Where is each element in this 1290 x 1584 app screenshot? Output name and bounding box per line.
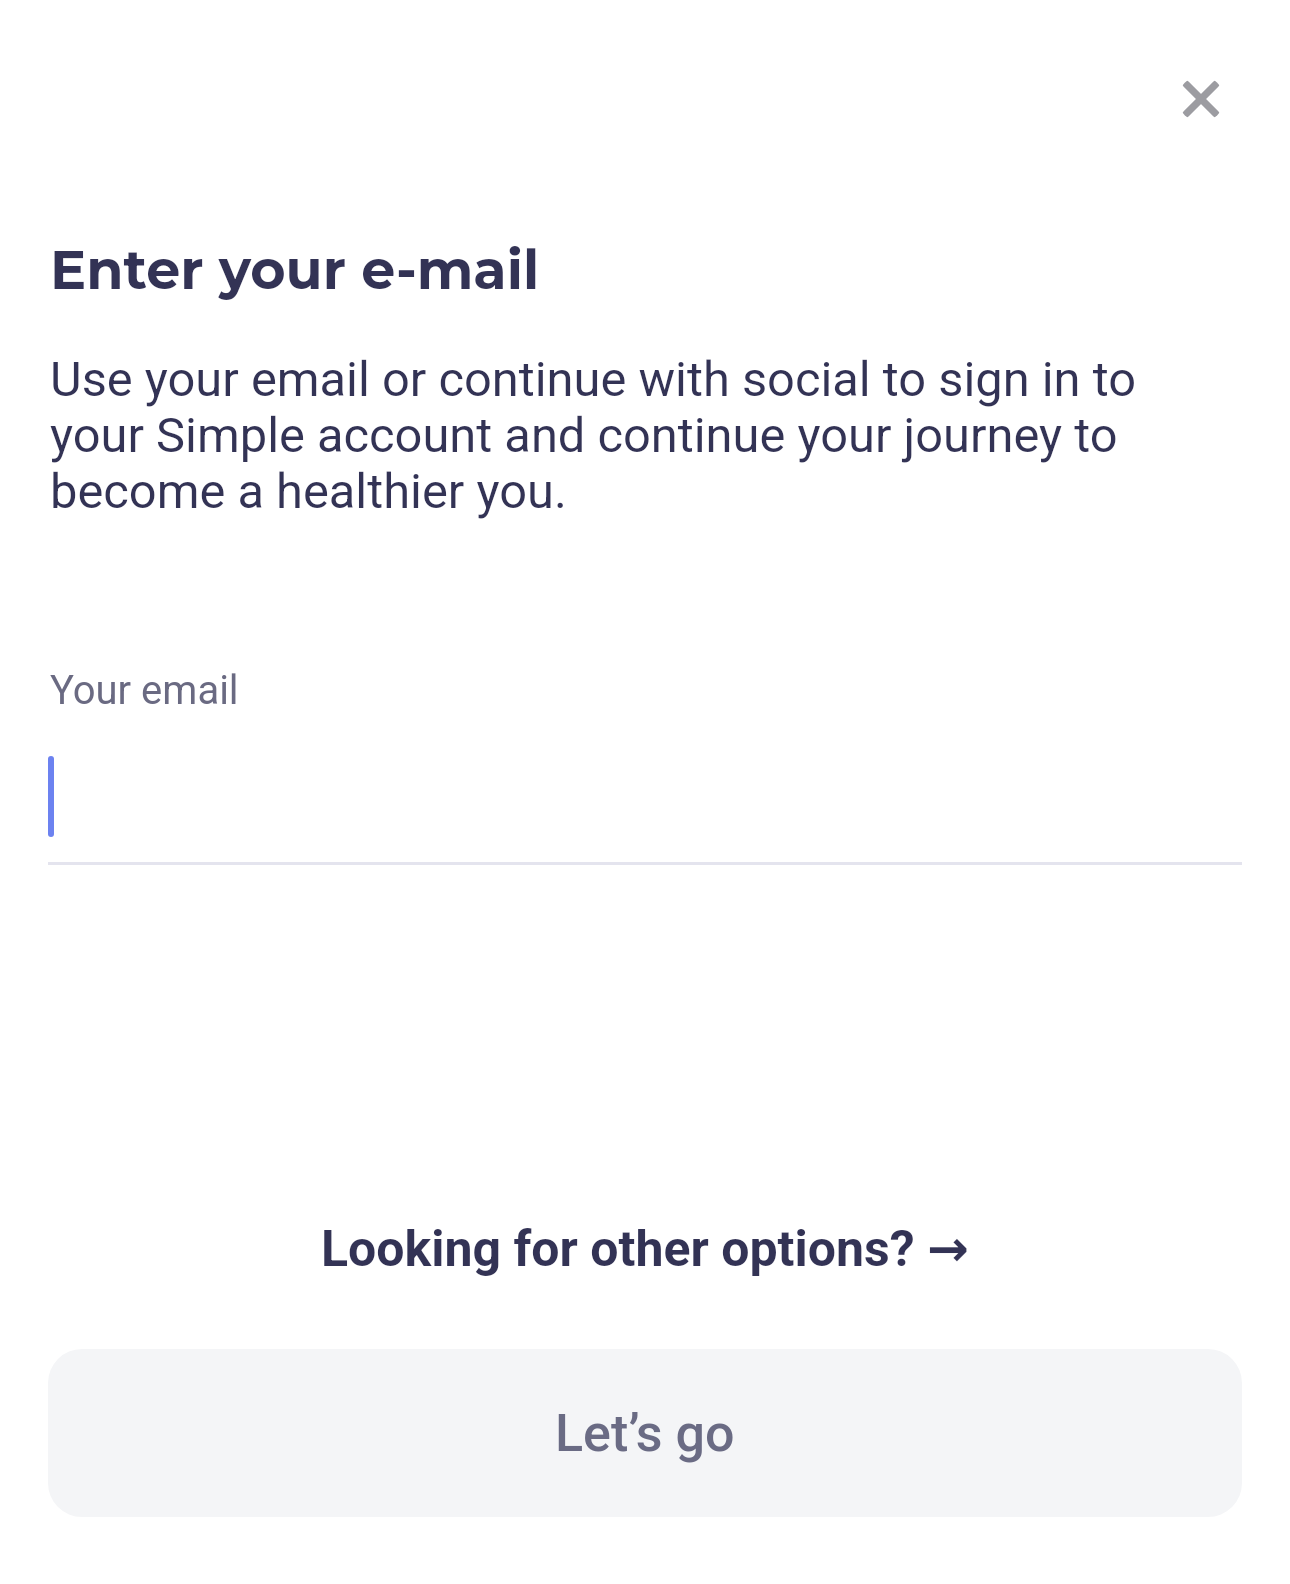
button[interactable]: Looking for other options? → xyxy=(297,1210,993,1289)
staticText: Your email xyxy=(50,667,239,714)
staticText: Looking for other options? → xyxy=(321,1220,969,1279)
button[interactable]: Let’s go xyxy=(48,1349,1242,1517)
staticText: Let’s go xyxy=(555,1403,735,1464)
button[interactable]: Email input field xyxy=(48,756,1242,837)
staticText: Enter your e-mail xyxy=(50,237,540,303)
button[interactable]: Close xyxy=(1178,76,1224,122)
staticText: Use your email or continue with social t… xyxy=(50,351,1190,520)
